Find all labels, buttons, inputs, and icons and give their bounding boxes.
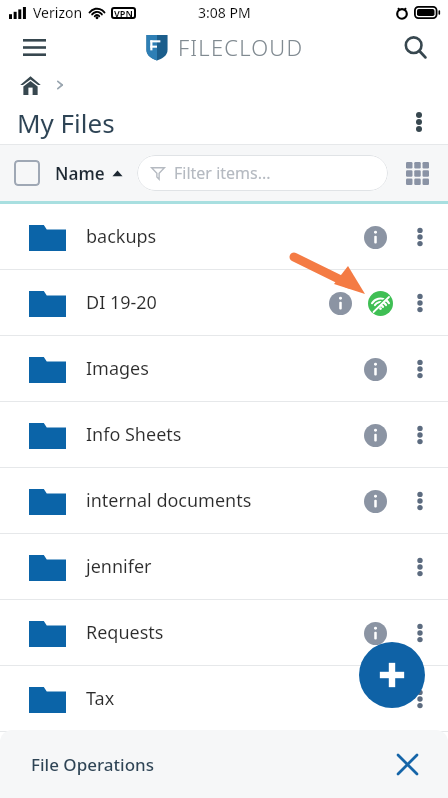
button[interactable]: Info <box>355 217 395 257</box>
staticText: Info Sheets <box>86 422 355 447</box>
staticText: Requests <box>86 620 355 645</box>
staticText: Name <box>55 162 105 185</box>
staticText: Images <box>86 356 355 381</box>
button[interactable]: Open navigation menu <box>13 26 55 68</box>
button[interactable]: More options <box>400 547 440 587</box>
staticText: My Files <box>17 105 115 140</box>
staticText: Filter items... <box>174 162 271 184</box>
staticText: VPN <box>114 7 133 19</box>
button[interactable]: internal documents <box>0 468 448 533</box>
button[interactable]: More options <box>399 102 439 142</box>
button[interactable]: Info <box>355 613 395 653</box>
staticText: FILECLOUD <box>178 32 304 62</box>
button[interactable]: More options <box>400 613 440 653</box>
button[interactable]: More options <box>400 349 440 389</box>
button[interactable]: Images <box>0 336 448 401</box>
button[interactable]: backups <box>0 204 448 269</box>
button[interactable]: More options <box>400 415 440 455</box>
button[interactable]: Info Sheets <box>0 402 448 467</box>
button[interactable]: Select all <box>14 160 40 186</box>
button[interactable]: Tax <box>0 666 448 731</box>
button[interactable]: More options <box>400 217 440 257</box>
button[interactable]: Add new item <box>359 642 425 708</box>
staticText: 3:08 PM <box>198 3 251 22</box>
button[interactable]: Info <box>320 283 360 323</box>
button[interactable]: More options <box>400 481 440 521</box>
button[interactable]: Info <box>355 349 395 389</box>
button[interactable]: Grid view <box>400 156 434 190</box>
staticText: File Operations <box>31 753 154 776</box>
button[interactable]: Name <box>55 162 123 185</box>
button[interactable]: jennifer <box>0 534 448 599</box>
button[interactable]: Info <box>355 481 395 521</box>
button[interactable]: More options <box>400 679 440 719</box>
staticText: DI 19-20 <box>86 290 320 315</box>
staticText: Verizon <box>33 3 83 22</box>
button[interactable]: Close <box>388 745 426 783</box>
button[interactable]: DI 19-20 <box>0 270 448 335</box>
staticText: backups <box>86 224 355 249</box>
button[interactable]: Requests <box>0 600 448 665</box>
staticText: internal documents <box>86 488 355 513</box>
button[interactable]: Offline sync <box>360 283 400 323</box>
staticText: jennifer <box>86 554 355 579</box>
staticText: Tax <box>86 686 355 711</box>
button[interactable]: Info <box>355 415 395 455</box>
button[interactable]: More options <box>400 283 440 323</box>
button[interactable]: Home <box>17 72 43 98</box>
button[interactable]: Search <box>394 26 436 68</box>
button[interactable]: Filter items... <box>137 155 388 191</box>
